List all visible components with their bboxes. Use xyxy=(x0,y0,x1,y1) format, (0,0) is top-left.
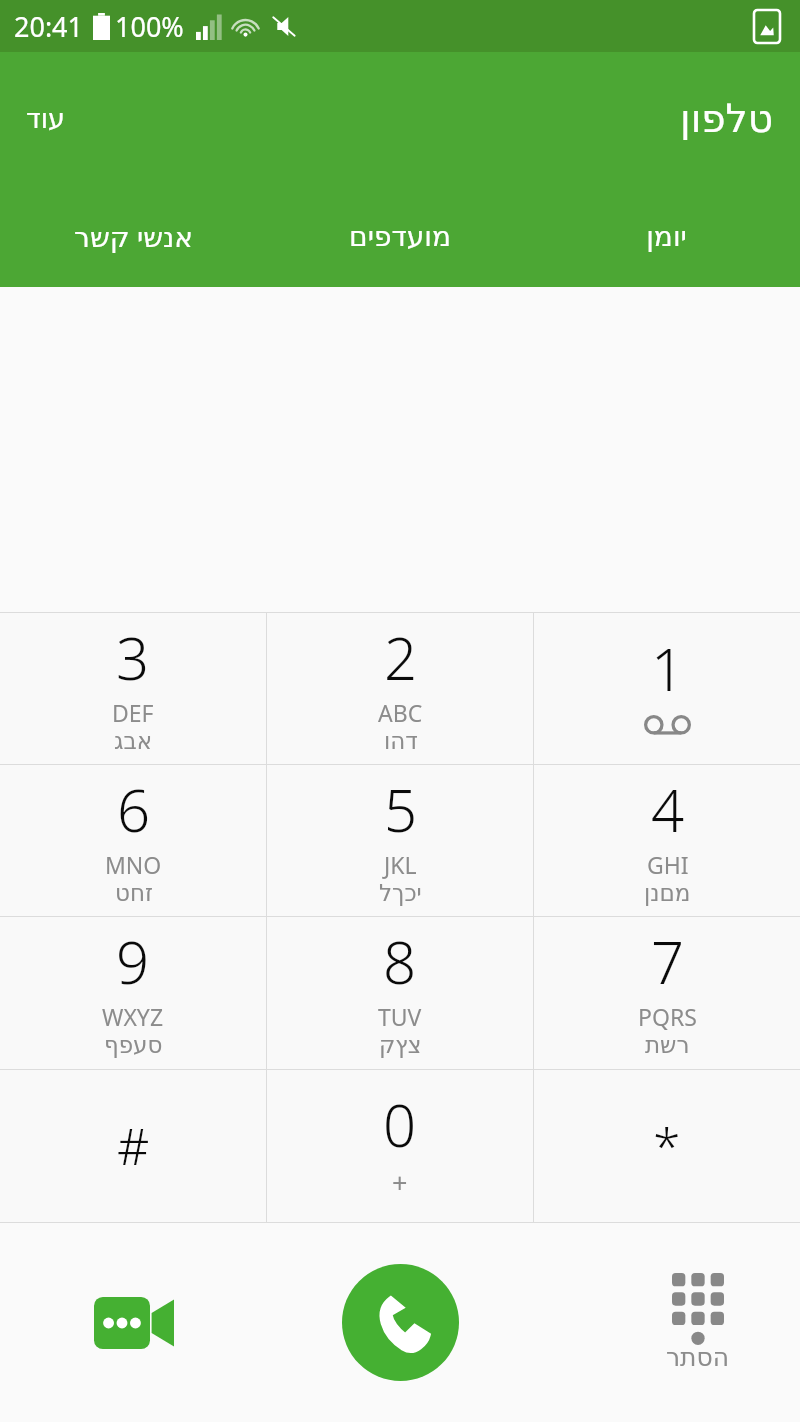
staticText: 9 xyxy=(116,922,150,1001)
staticText: 8 xyxy=(383,922,417,1001)
staticText: טלפון xyxy=(680,96,774,141)
button[interactable]: 3 xyxy=(0,613,266,764)
staticText: # xyxy=(117,1112,150,1180)
button[interactable]: 6 xyxy=(0,765,266,916)
staticText: יכךל xyxy=(379,880,422,907)
staticText: MNO xyxy=(105,849,162,880)
other: Screenshot xyxy=(754,10,780,43)
staticText: 1 xyxy=(651,629,685,708)
staticText: * xyxy=(653,1112,681,1180)
button[interactable]: 8 xyxy=(267,917,533,1069)
staticText: PQRS xyxy=(638,1001,697,1032)
staticText: 4 xyxy=(651,770,685,849)
staticText: מםנן xyxy=(644,880,691,907)
staticText: DEF xyxy=(112,697,154,728)
staticText: 3 xyxy=(116,618,150,697)
button[interactable]: יומן xyxy=(533,185,800,287)
button[interactable]: 1 xyxy=(534,613,800,764)
staticText: עוד xyxy=(26,103,65,134)
button[interactable]: 7 xyxy=(534,917,800,1069)
staticText: + xyxy=(392,1164,408,1201)
staticText: סעפף xyxy=(104,1032,163,1059)
button[interactable]: 5 xyxy=(267,765,533,916)
button[interactable]: עוד xyxy=(0,87,91,150)
staticText: אנשי קשר xyxy=(74,217,193,255)
staticText: רשת xyxy=(645,1032,690,1059)
staticText: TUV xyxy=(378,1001,422,1032)
button[interactable]: טלפון xyxy=(654,84,800,153)
button[interactable]: 2 xyxy=(267,613,533,764)
staticText: מועדפים xyxy=(349,220,451,253)
staticText: 2 xyxy=(384,618,418,697)
staticText: 6 xyxy=(117,770,151,849)
button[interactable]: * xyxy=(534,1070,800,1222)
staticText: JKL xyxy=(384,849,417,880)
button[interactable]: # xyxy=(0,1070,266,1222)
staticText: יומן xyxy=(646,220,687,253)
button[interactable]: 4 xyxy=(534,765,800,916)
staticText: 20:41 xyxy=(14,8,84,45)
staticText: 100% xyxy=(115,8,184,45)
staticText: הסתר xyxy=(666,1343,730,1372)
staticText: 0 xyxy=(383,1085,417,1164)
button[interactable]: מועדפים xyxy=(266,185,533,287)
staticText: ABC xyxy=(378,697,423,728)
button[interactable]: אנשי קשר xyxy=(0,185,266,287)
staticText: זחט xyxy=(115,880,153,907)
button[interactable]: הסתר xyxy=(654,1261,742,1384)
staticText: 5 xyxy=(384,770,418,849)
staticText: 7 xyxy=(651,922,685,1001)
staticText: דהו xyxy=(384,728,418,755)
staticText: GHI xyxy=(647,849,689,880)
button[interactable]: 0 xyxy=(267,1070,533,1222)
staticText: אבג xyxy=(114,728,153,755)
button[interactable]: Video call xyxy=(86,1275,182,1371)
button[interactable]: 9 xyxy=(0,917,266,1069)
staticText: צץק xyxy=(379,1032,422,1059)
button[interactable]: Call xyxy=(342,1264,459,1381)
staticText: WXYZ xyxy=(102,1001,164,1032)
